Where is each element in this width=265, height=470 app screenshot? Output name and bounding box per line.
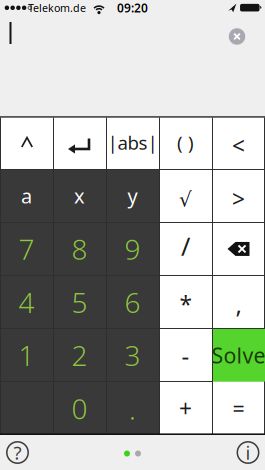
button[interactable]: 6	[106, 275, 159, 329]
button[interactable]: Help	[6, 440, 28, 465]
button[interactable]: 9	[106, 222, 159, 275]
staticText: a	[21, 182, 32, 209]
button[interactable]: x	[53, 169, 106, 222]
button[interactable]: .	[106, 382, 159, 435]
staticText: 6	[124, 283, 140, 321]
staticText: 2	[71, 337, 87, 374]
staticText: 9	[124, 230, 140, 267]
button[interactable]: 0	[53, 382, 106, 435]
button[interactable]: Clear	[229, 28, 245, 45]
staticText: *	[179, 289, 191, 319]
button[interactable]: Info	[237, 440, 259, 465]
button[interactable]: Delete	[212, 222, 265, 275]
button[interactable]: /	[159, 222, 212, 275]
button[interactable]: 8	[53, 222, 106, 275]
staticText: +	[179, 393, 192, 423]
staticText: ?	[13, 440, 21, 465]
staticText: 1	[18, 337, 34, 374]
button[interactable]: *	[159, 275, 212, 329]
button[interactable]: Power	[0, 116, 53, 169]
button[interactable]: 3	[106, 329, 159, 382]
button[interactable]: >	[212, 169, 265, 222]
button[interactable]: 1	[0, 329, 53, 382]
staticText: <	[232, 130, 245, 161]
staticText: i	[245, 440, 250, 465]
staticText: 09:20	[117, 0, 148, 16]
button[interactable]: Solve	[212, 329, 265, 382]
staticText: 8	[71, 230, 87, 267]
staticText: =	[232, 394, 244, 423]
staticText: ,	[235, 288, 241, 320]
button[interactable]: 7	[0, 222, 53, 275]
button[interactable]: +	[159, 382, 212, 435]
staticText: y	[127, 182, 137, 209]
staticText: 4	[18, 283, 34, 321]
button[interactable]: √	[159, 169, 212, 222]
button[interactable]: y	[106, 169, 159, 222]
staticText: √	[179, 188, 192, 211]
staticText: Telekom.de	[28, 1, 86, 15]
button[interactable]: ,	[212, 275, 265, 329]
staticText: x	[74, 182, 85, 209]
staticText: 7	[18, 230, 34, 267]
staticText: ( )	[177, 130, 194, 155]
staticText: /	[181, 229, 190, 263]
button[interactable]: 5	[53, 275, 106, 329]
staticText: .	[129, 390, 136, 427]
button[interactable]: a	[0, 169, 53, 222]
button[interactable]: ( )	[159, 116, 212, 169]
button[interactable]: 4	[0, 275, 53, 329]
button[interactable]: -	[159, 329, 212, 382]
staticText: 5	[71, 283, 87, 321]
button[interactable]: 2	[53, 329, 106, 382]
staticText: >	[232, 184, 245, 214]
staticText: 3	[124, 337, 140, 374]
staticText: -	[181, 339, 189, 371]
button[interactable]: =	[212, 382, 265, 435]
staticText: |abs|	[107, 130, 157, 155]
button[interactable]: Return	[53, 116, 106, 169]
button[interactable]: <	[212, 116, 265, 169]
staticText: Solve	[211, 341, 265, 369]
button[interactable]: |abs|	[106, 116, 159, 169]
staticText: 0	[71, 390, 87, 427]
